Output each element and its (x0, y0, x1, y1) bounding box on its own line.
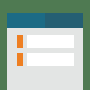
button[interactable]: Second item (7, 53, 83, 66)
button[interactable]: First item (7, 35, 83, 48)
